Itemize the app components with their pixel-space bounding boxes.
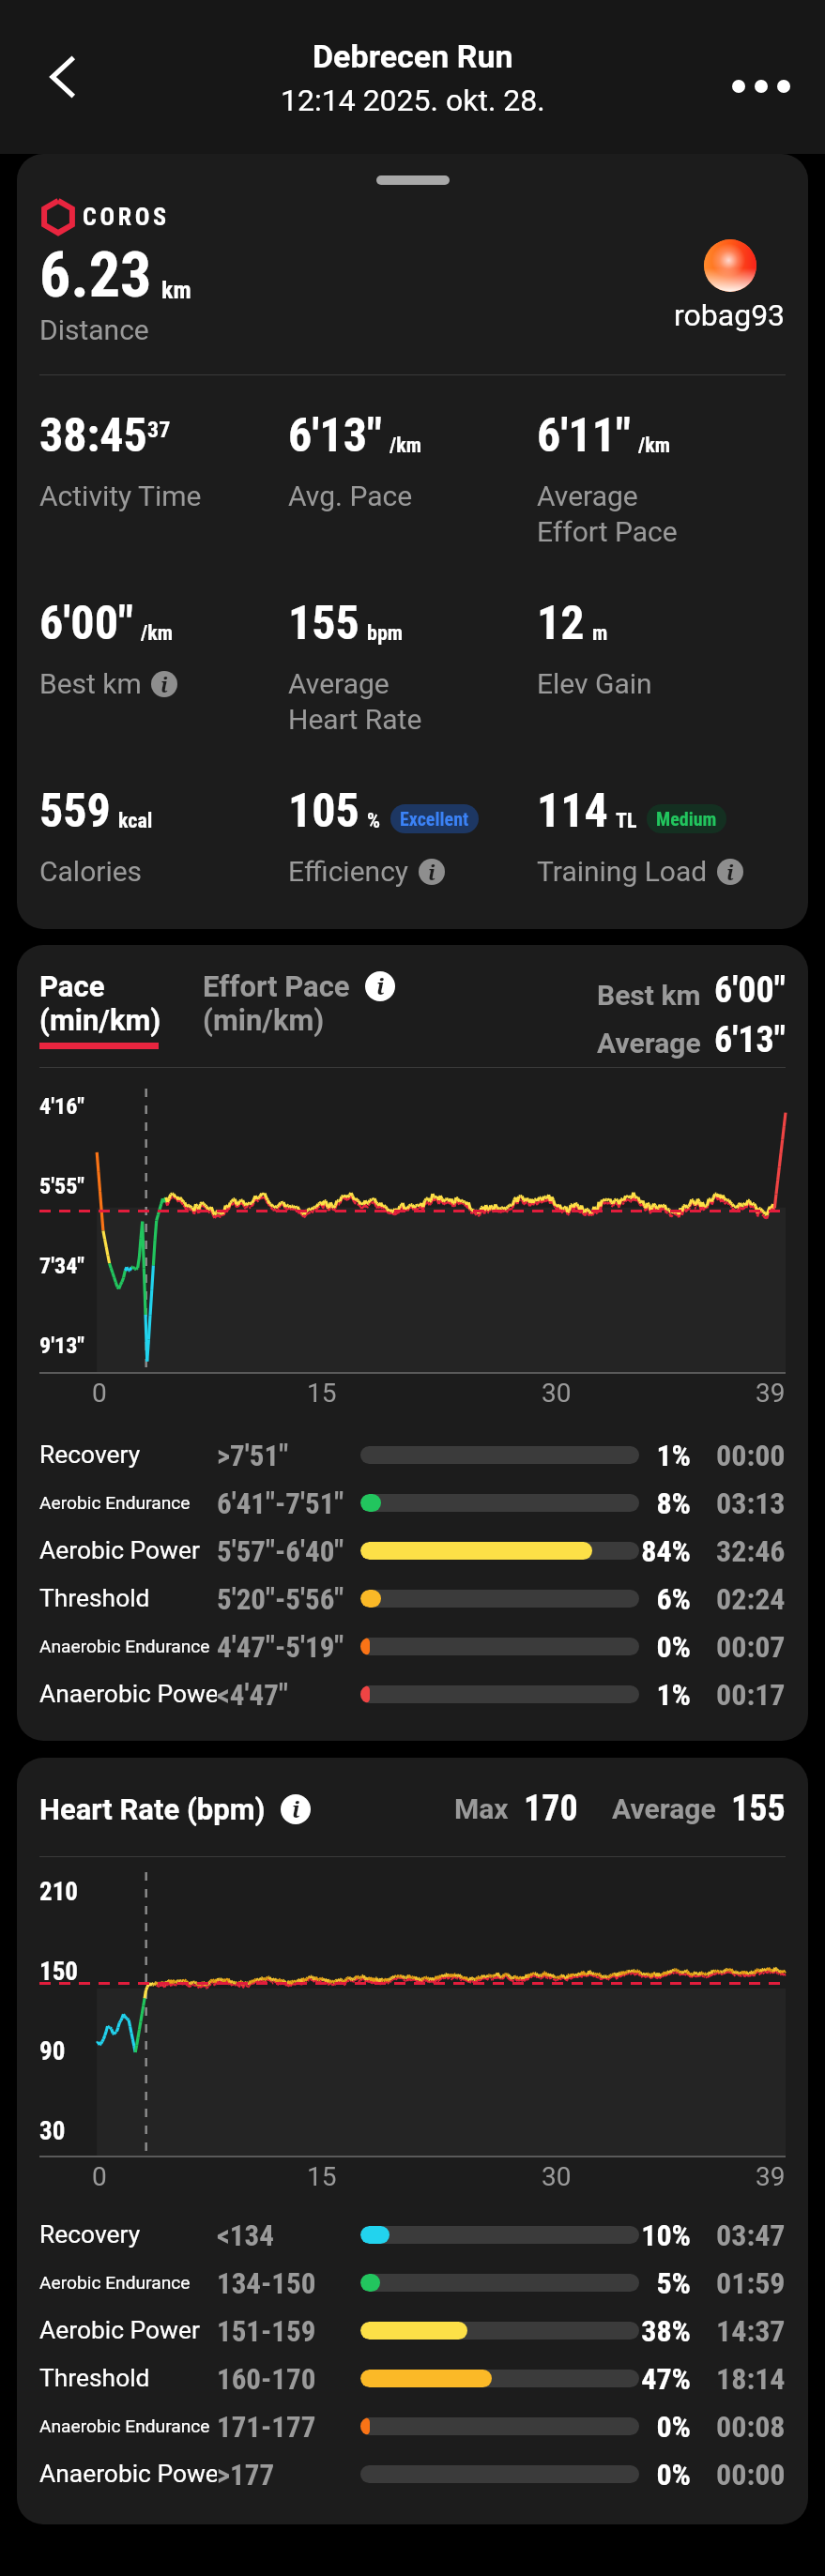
- staticText: 00:00: [716, 2457, 786, 2492]
- staticText: 00:00: [716, 1438, 786, 1473]
- staticText: Anaerobic Endurance: [39, 1636, 210, 1657]
- staticText: 0%: [639, 2409, 691, 2445]
- staticText: 10%: [639, 2218, 691, 2253]
- staticText: 5'55": [39, 1173, 84, 1199]
- staticText: 02:24: [716, 1581, 786, 1617]
- staticText: 15: [307, 1378, 337, 1409]
- staticText: Average: [597, 1027, 701, 1059]
- staticText: 37: [147, 417, 171, 443]
- staticText: Best km: [597, 979, 701, 1012]
- staticText: 00:08: [716, 2409, 786, 2445]
- staticText: 47%: [639, 2361, 691, 2397]
- staticText: 559: [39, 784, 111, 839]
- staticText: 39: [756, 2161, 786, 2192]
- staticText: (min/km): [39, 1003, 161, 1037]
- staticText: 105: [288, 784, 359, 839]
- staticText: 15: [307, 2161, 337, 2192]
- staticText: 5%: [639, 2265, 691, 2301]
- staticText: 6'11": [537, 408, 631, 464]
- staticText: 155: [288, 596, 359, 651]
- staticText: m: [592, 621, 608, 646]
- staticText: kcal: [118, 809, 153, 833]
- button[interactable]: Aerobic Power: [39, 1527, 786, 1575]
- staticText: 00:07: [716, 1629, 786, 1665]
- staticText: >177: [217, 2458, 275, 2492]
- staticText: Threshold: [39, 2364, 150, 2393]
- staticText: 4'47"-5'19": [217, 1630, 344, 1664]
- staticText: 00:17: [716, 1677, 786, 1713]
- staticText: Anaerobic Power: [39, 2460, 217, 2489]
- staticText: %: [367, 809, 381, 833]
- staticText: bpm: [367, 621, 404, 646]
- staticText: 38%: [639, 2313, 691, 2349]
- button[interactable]: Anaerobic Power: [39, 2450, 786, 2498]
- staticText: 0: [92, 1378, 107, 1409]
- button[interactable]: Recovery: [39, 1431, 786, 1479]
- staticText: 32:46: [716, 1533, 786, 1569]
- staticText: COROS: [83, 203, 170, 231]
- staticText: Best km: [39, 667, 142, 700]
- staticText: Effort Pace: [203, 969, 350, 1003]
- button[interactable]: Recovery: [39, 2211, 786, 2259]
- staticText: 38:45: [39, 408, 147, 464]
- staticText: i: [292, 1794, 300, 1823]
- staticText: i: [160, 671, 168, 696]
- staticText: 12: [537, 596, 585, 651]
- staticText: Aerobic Power: [39, 1536, 200, 1565]
- staticText: Medium: [656, 808, 717, 830]
- staticText: 6%: [639, 1581, 691, 1617]
- staticText: Training Load: [537, 855, 708, 888]
- staticText: Recovery: [39, 1440, 141, 1470]
- staticText: Activity Time: [39, 480, 202, 512]
- button[interactable]: Threshold: [39, 1575, 786, 1623]
- staticText: Aerobic Power: [39, 2316, 200, 2345]
- button[interactable]: More options: [720, 45, 802, 128]
- staticText: Max: [454, 1792, 509, 1825]
- button[interactable]: Anaerobic Endurance: [39, 2402, 786, 2450]
- staticText: i: [726, 859, 734, 884]
- staticText: 0: [92, 2161, 107, 2192]
- button[interactable]: Aerobic Power: [39, 2307, 786, 2355]
- button[interactable]: Pace: [39, 969, 161, 1049]
- staticText: Average Effort Pace: [537, 480, 678, 548]
- staticText: 150: [39, 1957, 78, 1987]
- button[interactable]: Anaerobic Power: [39, 1670, 786, 1718]
- staticText: 7'34": [39, 1253, 84, 1279]
- button[interactable]: Aerobic Endurance: [39, 2259, 786, 2307]
- staticText: /km: [638, 434, 671, 458]
- staticText: 01:59: [716, 2265, 786, 2301]
- button[interactable]: Aerobic Endurance: [39, 1479, 786, 1527]
- staticText: 170: [524, 1788, 578, 1830]
- staticText: 4'16": [39, 1093, 84, 1120]
- staticText: Anaerobic Power: [39, 1680, 217, 1709]
- staticText: Recovery: [39, 2220, 141, 2249]
- staticText: 155: [731, 1788, 786, 1830]
- button[interactable]: Threshold: [39, 2355, 786, 2402]
- staticText: Average Heart Rate: [288, 667, 422, 736]
- staticText: km: [161, 276, 191, 304]
- staticText: 03:13: [716, 1486, 786, 1521]
- staticText: Anaerobic Endurance: [39, 2416, 210, 2437]
- staticText: 8%: [639, 1486, 691, 1521]
- button[interactable]: Effort Pace: [203, 969, 395, 1037]
- staticText: Aerobic Endurance: [39, 2272, 191, 2294]
- staticText: 6'13": [714, 1019, 786, 1059]
- staticText: 9'13": [39, 1333, 84, 1359]
- staticText: 6'00": [714, 969, 786, 1012]
- staticText: Heart Rate (bpm): [39, 1792, 266, 1826]
- staticText: 0%: [639, 2457, 691, 2492]
- staticText: 30: [542, 1378, 572, 1409]
- staticText: /km: [390, 434, 422, 458]
- staticText: Efficiency: [288, 855, 409, 888]
- button[interactable]: Back: [21, 36, 103, 118]
- staticText: 160-170: [217, 2362, 316, 2396]
- staticText: 90: [39, 2036, 66, 2066]
- staticText: Debrecen Run: [313, 38, 513, 75]
- staticText: TL: [616, 809, 637, 833]
- button[interactable]: Anaerobic Endurance: [39, 1623, 786, 1670]
- staticText: 18:14: [716, 2361, 786, 2397]
- staticText: 114: [537, 784, 608, 839]
- staticText: 1%: [639, 1438, 691, 1473]
- staticText: (min/km): [203, 1003, 325, 1037]
- staticText: 210: [39, 1877, 78, 1907]
